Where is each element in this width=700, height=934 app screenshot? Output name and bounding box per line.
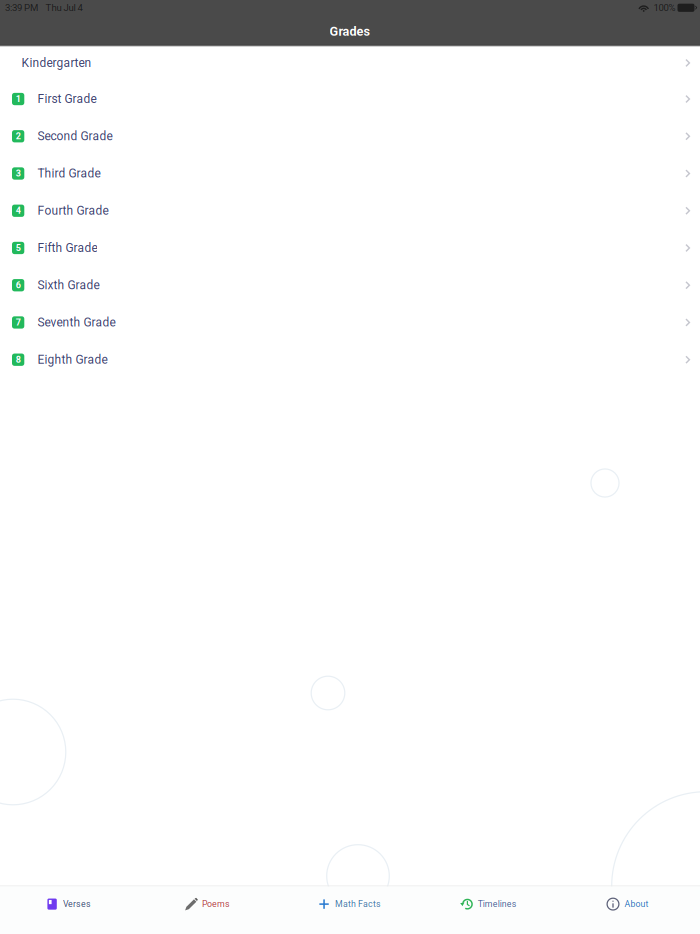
button[interactable]: Verses [0, 886, 140, 934]
staticText: Timelines [478, 899, 517, 909]
staticText: 2 [16, 131, 21, 141]
button[interactable]: 6 [0, 267, 700, 304]
staticText: Thu Jul 4 [45, 2, 82, 13]
button[interactable]: 2 [0, 118, 700, 155]
staticText: 100% [653, 2, 675, 13]
staticText: Seventh Grade [37, 315, 115, 329]
staticText: Kindergarten [21, 56, 91, 70]
staticText: Third Grade [37, 166, 100, 181]
staticText: 6 [16, 280, 21, 290]
staticText: 8 [16, 354, 21, 365]
button[interactable]: 4 [0, 192, 700, 229]
button[interactable]: Math Facts [280, 886, 420, 934]
button[interactable]: About [560, 886, 700, 934]
staticText: 1 [16, 94, 21, 104]
staticText: Fourth Grade [37, 204, 108, 218]
staticText: 4 [16, 205, 21, 216]
button[interactable]: 3 [0, 155, 700, 192]
staticText: Verses [63, 899, 91, 909]
staticText: 3 [16, 168, 21, 179]
staticText: Poems [202, 899, 230, 909]
button[interactable]: Timelines [420, 886, 560, 934]
staticText: 5 [16, 243, 21, 253]
button[interactable]: Poems [140, 886, 280, 934]
staticText: Second Grade [37, 129, 112, 143]
staticText: Math Facts [335, 899, 381, 909]
staticText: Eighth Grade [37, 353, 107, 367]
staticText: First Grade [37, 92, 96, 106]
staticText: Sixth Grade [37, 278, 99, 292]
staticText: 3:39 PM [5, 2, 38, 13]
button[interactable]: Kindergarten [0, 45, 700, 80]
staticText: About [625, 899, 649, 909]
staticText: Fifth Grade [37, 241, 97, 255]
button[interactable]: 8 [0, 341, 700, 378]
staticText: 7 [16, 317, 21, 328]
staticText: Grades [329, 24, 370, 39]
button[interactable]: 7 [0, 304, 700, 341]
button[interactable]: 1 [0, 80, 700, 118]
button[interactable]: 5 [0, 229, 700, 267]
